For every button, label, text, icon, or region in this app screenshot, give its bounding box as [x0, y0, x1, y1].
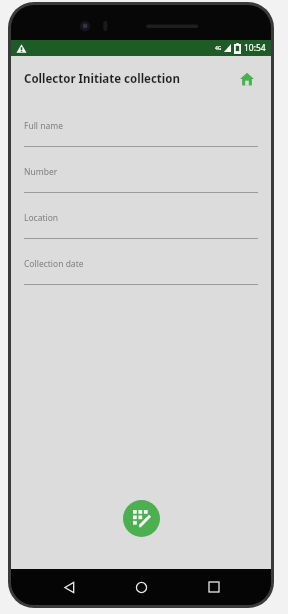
- button[interactable]: Home: [126, 572, 156, 602]
- staticText: Number: [24, 166, 58, 178]
- button[interactable]: Edit collection: [123, 500, 160, 537]
- staticText: Collector Initiate collection: [24, 71, 236, 87]
- staticText: Location: [24, 212, 59, 224]
- button[interactable]: Number: [24, 147, 258, 193]
- button[interactable]: Full name: [24, 101, 258, 147]
- staticText: 10:54: [244, 42, 266, 54]
- staticText: 4G: [215, 45, 222, 52]
- staticText: Collection date: [24, 258, 84, 270]
- staticText: Full name: [24, 120, 64, 132]
- button[interactable]: Recent apps: [199, 572, 229, 602]
- button[interactable]: Home: [236, 68, 258, 90]
- button[interactable]: Back: [54, 572, 84, 602]
- button[interactable]: Location: [24, 193, 258, 239]
- button[interactable]: Collection date: [24, 239, 258, 285]
